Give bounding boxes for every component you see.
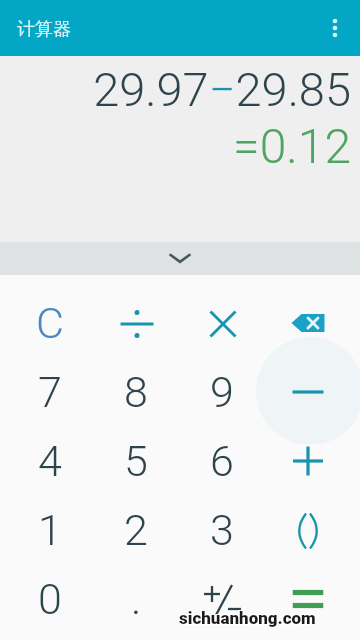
button[interactable]: Divide (93, 289, 179, 357)
other: Minus (288, 372, 328, 412)
staticText: sichuanhong.com (180, 607, 317, 627)
staticText: C (36, 298, 64, 348)
button[interactable]: Collapse (0, 242, 360, 275)
staticText: 5 (124, 436, 148, 486)
staticText: 6 (210, 436, 234, 486)
other: Parentheses (293, 509, 323, 553)
button[interactable]: . (93, 565, 179, 633)
staticText: 计算器 (17, 18, 71, 41)
staticText: sichuanhong.com (178, 608, 315, 628)
button[interactable]: 4 (7, 427, 93, 495)
button[interactable]: 2 (93, 496, 179, 564)
button[interactable]: 9 (179, 358, 265, 426)
other: Equals (286, 577, 330, 621)
button[interactable]: Plus minus (179, 565, 265, 633)
button[interactable]: 0 (7, 565, 93, 633)
staticText: 2 (124, 505, 148, 555)
staticText: sichuanhong.com (180, 608, 317, 628)
other: Multiply (203, 304, 243, 344)
staticText: 4 (38, 436, 62, 486)
button[interactable]: 6 (179, 427, 265, 495)
other: Plus minus (197, 574, 247, 624)
button[interactable]: Equals (265, 565, 351, 633)
staticText: sichuanhong.com (178, 607, 315, 627)
staticText: 7 (38, 367, 62, 417)
staticText: =0.12 (233, 118, 351, 174)
staticText: 1 (38, 505, 62, 555)
button[interactable]: 1 (7, 496, 93, 564)
button[interactable]: Multiply (179, 289, 265, 357)
staticText: sichuanhong.com (179, 608, 316, 628)
staticText: 29.97−29.85 (93, 62, 351, 117)
staticText: sichuanhong.com (179, 609, 316, 629)
button[interactable]: Backspace (265, 289, 351, 357)
button[interactable]: Minus (265, 358, 351, 426)
button[interactable]: More options (323, 16, 347, 40)
button[interactable]: Plus (265, 427, 351, 495)
staticText: 9 (210, 367, 234, 417)
button[interactable]: C (7, 289, 93, 357)
staticText: sichuanhong.com (180, 609, 317, 629)
staticText: 3 (210, 505, 234, 555)
button[interactable]: 3 (179, 496, 265, 564)
other: Divide (116, 304, 156, 344)
button[interactable]: Parentheses (265, 496, 351, 564)
button[interactable]: 8 (93, 358, 179, 426)
button[interactable]: 7 (7, 358, 93, 426)
staticText: sichuanhong.com (178, 609, 315, 629)
other: Backspace (286, 311, 330, 335)
staticText: . (131, 574, 142, 624)
staticText: 8 (124, 367, 148, 417)
staticText: 0 (38, 574, 62, 624)
staticText: sichuanhong.com (179, 607, 316, 627)
other: Plus (288, 441, 328, 481)
button[interactable]: 5 (93, 427, 179, 495)
